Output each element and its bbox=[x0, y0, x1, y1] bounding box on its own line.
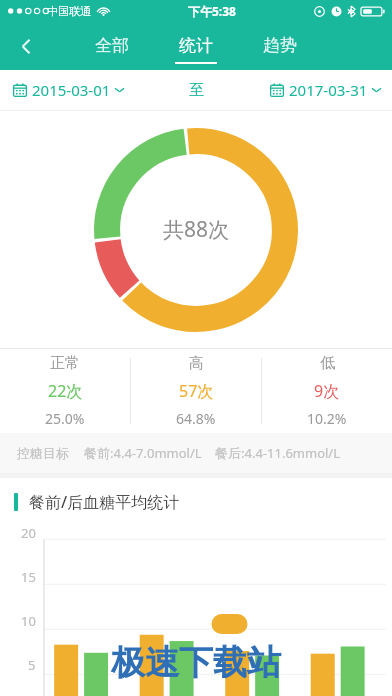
button[interactable]: 高 bbox=[131, 349, 261, 433]
button[interactable]: 2015-03-01 bbox=[13, 75, 124, 105]
staticText: 趋势 bbox=[263, 35, 297, 56]
staticText: 餐前:4.4-7.0mmol/L bbox=[84, 444, 202, 462]
staticText: 正常 bbox=[50, 354, 80, 373]
staticText: 25.0% bbox=[45, 409, 85, 428]
button[interactable]: 2017-03-31 bbox=[270, 75, 381, 105]
staticText: 2015-03-01 bbox=[32, 80, 111, 100]
staticText: 全部 bbox=[95, 35, 129, 56]
button[interactable]: 正常 bbox=[0, 349, 130, 433]
staticText: 餐后:4.4-11.6mmol/L bbox=[215, 444, 340, 462]
staticText: 控糖目标 bbox=[17, 445, 69, 461]
button[interactable]: 统计 bbox=[169, 22, 223, 70]
button[interactable]: 趋势 bbox=[253, 22, 307, 70]
staticText: 2017-03-31 bbox=[289, 80, 368, 100]
staticText: 中国联通 bbox=[47, 4, 91, 18]
staticText: 统计 bbox=[179, 35, 213, 56]
staticText: 低 bbox=[320, 354, 335, 373]
staticText: 20 bbox=[21, 524, 36, 542]
staticText: 极速下载站 bbox=[111, 641, 281, 684]
staticText: 下午5:38 bbox=[188, 3, 236, 19]
staticText: 5 bbox=[28, 656, 36, 674]
staticText: 高 bbox=[189, 354, 204, 373]
staticText: 15 bbox=[21, 568, 36, 586]
staticText: 至 bbox=[189, 81, 204, 100]
button[interactable]: Back bbox=[0, 22, 52, 70]
staticText: 22次 bbox=[48, 380, 83, 402]
staticText: 餐前/后血糖平均统计 bbox=[29, 491, 180, 513]
staticText: 64.8% bbox=[176, 409, 216, 428]
staticText: 共88次 bbox=[163, 215, 230, 244]
staticText: 57次 bbox=[179, 380, 214, 402]
button[interactable]: 全部 bbox=[85, 22, 139, 70]
staticText: 10.2% bbox=[307, 409, 347, 428]
button[interactable]: 低 bbox=[262, 349, 392, 433]
staticText: 9次 bbox=[314, 380, 340, 402]
staticText: 10 bbox=[21, 612, 36, 630]
